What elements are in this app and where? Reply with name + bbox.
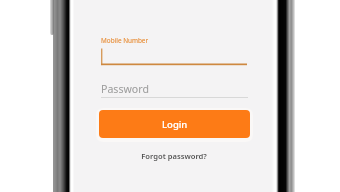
- staticText: Forgot password?: [141, 151, 207, 161]
- staticText: Password: [101, 82, 149, 96]
- button[interactable]: Forgot password?: [134, 149, 214, 163]
- staticText: Login: [162, 118, 188, 131]
- staticText: Mobile Number: [101, 36, 149, 45]
- button[interactable]: Login: [99, 110, 250, 138]
